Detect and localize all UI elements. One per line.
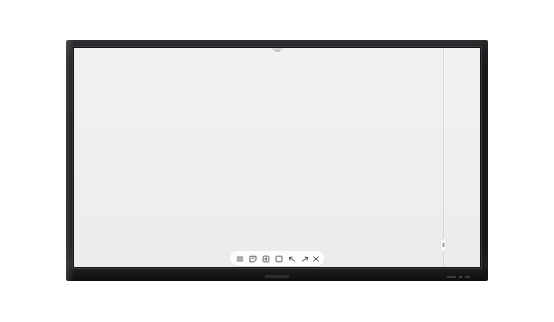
button[interactable]: Undo xyxy=(286,251,297,266)
button[interactable]: Note xyxy=(247,251,258,266)
button[interactable]: Close xyxy=(312,251,320,266)
button[interactable]: Menu xyxy=(234,251,245,266)
button[interactable]: Frame xyxy=(273,251,284,266)
button[interactable]: Capture xyxy=(260,251,271,266)
button[interactable]: Side panel handle xyxy=(440,238,447,252)
button[interactable]: Redo xyxy=(299,251,310,266)
